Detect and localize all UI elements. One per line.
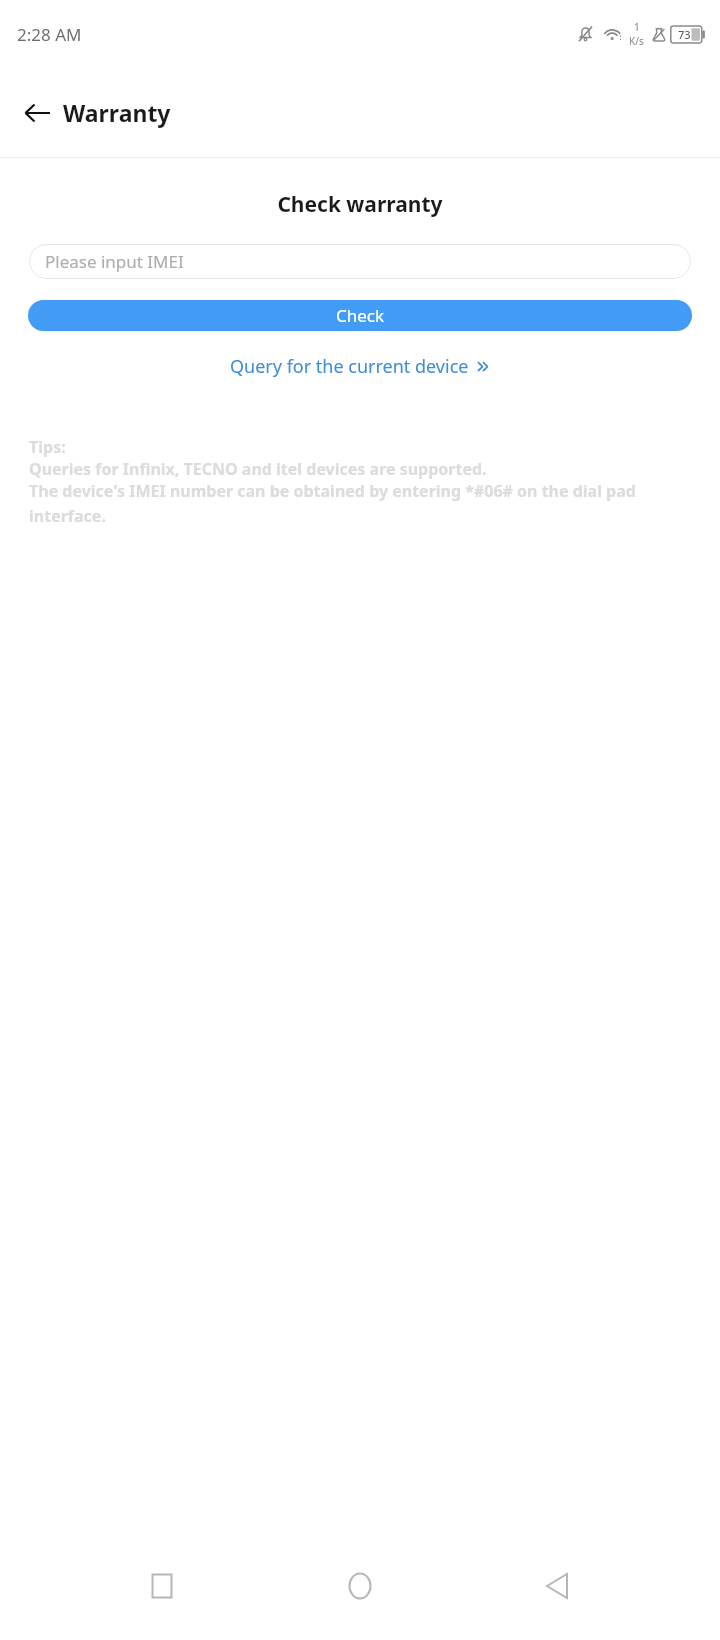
staticText: The device's IMEI number can be obtained… <box>29 480 691 526</box>
staticText: Check <box>336 304 385 327</box>
button[interactable]: Back <box>522 1550 594 1622</box>
button[interactable]: Back <box>14 89 62 137</box>
staticText: Query for the current device <box>230 354 469 379</box>
button[interactable]: Please input IMEI <box>29 244 691 279</box>
staticText: 1 <box>634 20 640 34</box>
staticText: 73 <box>678 27 691 42</box>
staticText: Please input IMEI <box>45 250 184 273</box>
staticText: Warranty <box>63 97 171 128</box>
button[interactable]: Query for the current device <box>224 350 496 383</box>
staticText: Tips: <box>29 436 66 458</box>
staticText: 2:28 AM <box>17 23 82 46</box>
button[interactable]: Check <box>28 300 692 331</box>
button[interactable]: Home <box>324 1550 396 1622</box>
staticText: Queries for Infinix, TECNO and itel devi… <box>29 458 487 480</box>
staticText: Check warranty <box>0 190 720 219</box>
staticText: K/s <box>629 34 644 48</box>
button[interactable]: Recent apps <box>126 1550 198 1622</box>
